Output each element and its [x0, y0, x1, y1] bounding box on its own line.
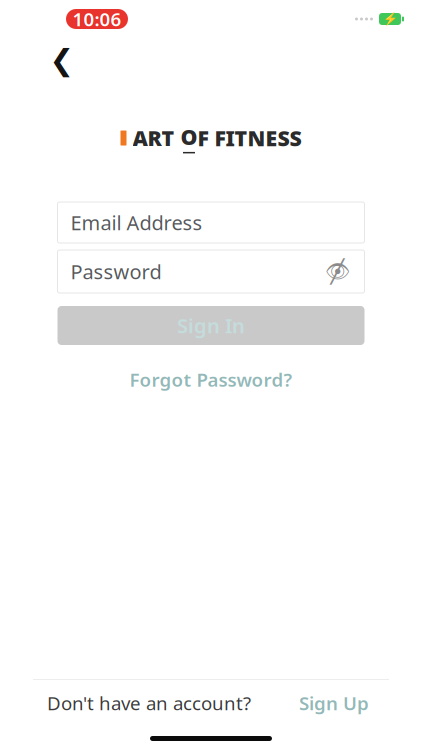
staticText: ART	[132, 124, 180, 152]
button[interactable]: Back	[40, 38, 84, 82]
staticText: Password	[70, 258, 161, 285]
staticText: ⚡	[382, 12, 397, 26]
staticText: 10:06	[72, 7, 121, 31]
staticText: O	[180, 123, 197, 151]
staticText: Sign Up	[299, 691, 369, 715]
button[interactable]: Forgot Password?	[121, 363, 300, 396]
button[interactable]: Sign In	[57, 306, 364, 345]
button[interactable]: Sign Up	[293, 685, 375, 721]
staticText: Forgot Password?	[129, 367, 292, 392]
staticText: Sign In	[177, 312, 245, 339]
staticText: ❮	[49, 43, 74, 77]
staticText: F FITNESS	[197, 124, 301, 152]
button[interactable]: Show password	[323, 257, 351, 285]
staticText: Email Address	[70, 209, 202, 236]
staticText: ╱	[330, 259, 344, 284]
staticText: 👁	[325, 260, 350, 283]
staticText: Don't have an account?	[47, 691, 251, 715]
